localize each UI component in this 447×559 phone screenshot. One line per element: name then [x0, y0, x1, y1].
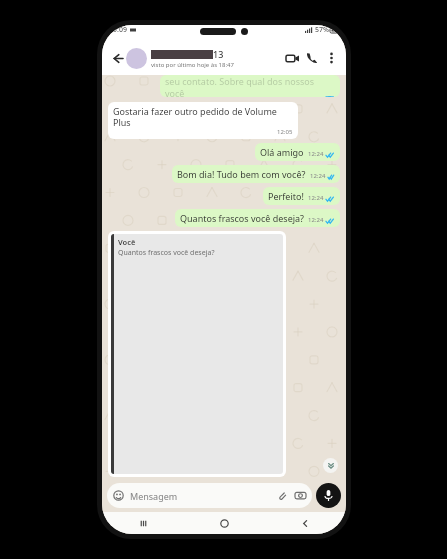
staticText: 19:09 [109, 25, 127, 35]
button[interactable]: seu contato. Sobre qual dos nossos você [160, 75, 340, 97]
staticText: 12:05 [277, 128, 293, 136]
staticText: Quantos frascos você deseja? [118, 248, 215, 258]
staticText: Olá amigo [260, 146, 304, 158]
button[interactable]: More options [322, 49, 340, 67]
button[interactable]: 13 [151, 48, 282, 69]
button[interactable]: Camera [294, 489, 307, 502]
button[interactable]: Olá amigo [255, 143, 340, 161]
staticText: 13 [213, 48, 224, 60]
staticText: 12:24 [308, 194, 324, 202]
staticText: Você [118, 237, 136, 247]
button[interactable]: Scroll to bottom [323, 458, 338, 473]
button[interactable]: Perfeito! [263, 187, 340, 205]
button[interactable]: Recents [102, 512, 184, 534]
button[interactable]: Bom dia! Tudo bem com você? [172, 165, 340, 183]
button[interactable]: Back [265, 512, 346, 534]
button[interactable]: Attach [275, 489, 288, 502]
button[interactable]: Quantos frascos você deseja? [175, 209, 340, 227]
staticText: 57% [315, 25, 329, 35]
staticText: 12:24 [310, 172, 326, 180]
staticText: Mensagem [130, 490, 178, 502]
staticText: Gostaria fazer outro pedido de Volume Pl… [113, 105, 293, 128]
button[interactable]: Voice message [316, 483, 341, 508]
button[interactable]: Você [108, 231, 286, 477]
staticText: Bom dia! Tudo bem com você? [177, 168, 306, 180]
button[interactable]: Emoji [107, 483, 312, 508]
staticText: 12:24 [308, 150, 324, 158]
staticText: visto por último hoje às 18:47 [151, 61, 234, 69]
staticText: 12:24 [308, 216, 324, 224]
button[interactable]: Home [184, 512, 265, 534]
button[interactable]: Gostaria fazer outro pedido de Volume Pl… [108, 102, 298, 139]
button[interactable]: Back [108, 49, 126, 67]
staticText: seu contato. Sobre qual dos nossos você [165, 75, 335, 97]
button[interactable]: Call [302, 48, 322, 68]
button[interactable]: Video call [282, 48, 302, 68]
staticText: Perfeito! [268, 190, 304, 202]
staticText: Quantos frascos você deseja? [180, 212, 304, 224]
other: Emoji [112, 489, 125, 502]
